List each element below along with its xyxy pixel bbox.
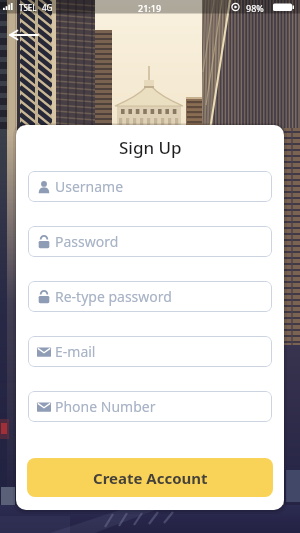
button[interactable]: Password [28,226,272,257]
staticText: Phone Number [55,397,156,416]
staticText: Re-type password [55,287,172,306]
staticText: Password [55,232,119,251]
button[interactable]: Re-type password [28,281,272,312]
button[interactable]: E-mail [28,336,272,367]
staticText: 21:19 [138,2,162,14]
staticText: Sign Up [119,136,182,159]
button[interactable]: Create Account [27,458,273,497]
staticText: Create Account [93,468,208,488]
staticText: E-mail [55,342,96,361]
button[interactable]: Username [28,171,272,202]
staticText: Username [55,177,124,196]
staticText: 4G [42,2,53,13]
staticText: 98% [246,2,264,14]
staticText: TSEL [19,2,37,13]
button[interactable]: Phone Number [28,391,272,422]
